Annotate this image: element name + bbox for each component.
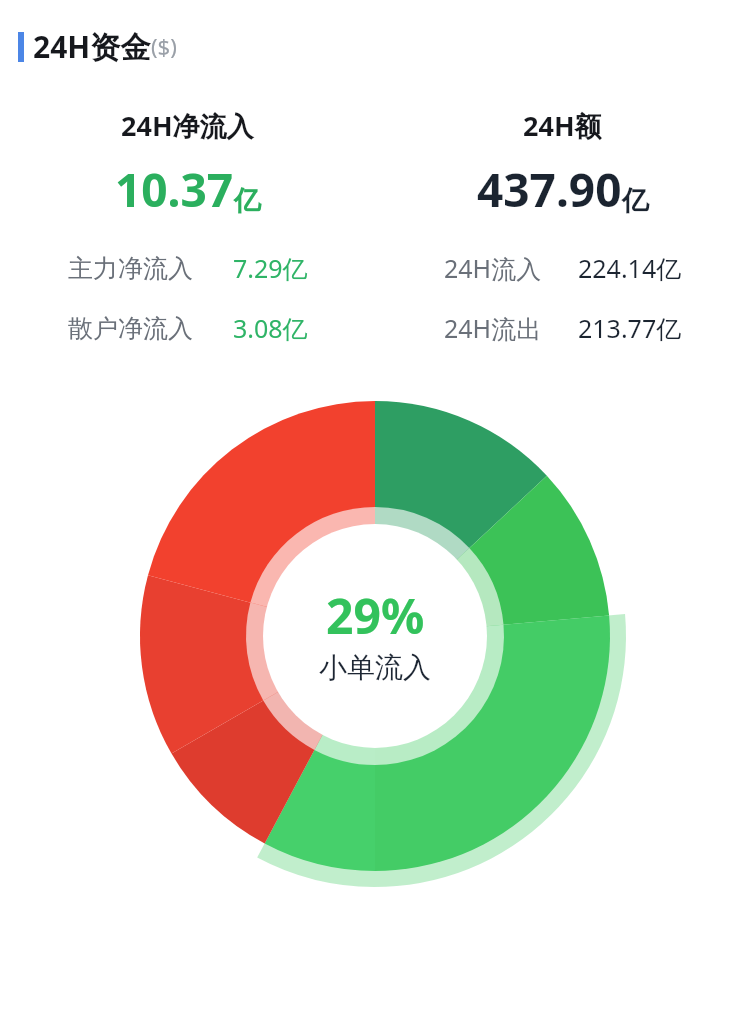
staticText: 散户净流入 — [68, 313, 193, 344]
button[interactable]: 主力净流入 — [68, 251, 308, 285]
staticText: 224.14亿 — [578, 251, 682, 285]
staticText: 24H净流入 — [121, 107, 254, 144]
staticText: 24H资金 — [33, 26, 151, 67]
button[interactable]: 24H流入 — [444, 251, 682, 285]
staticText: 主力净流入 — [68, 253, 193, 284]
staticText: 24H流出 — [444, 311, 542, 345]
button[interactable]: 24H流出 — [444, 311, 682, 345]
staticText: 7.29亿 — [233, 251, 308, 285]
button[interactable]: 资金流向环形图 — [125, 391, 625, 901]
staticText: 亿 — [622, 184, 649, 218]
staticText: 24H额 — [523, 107, 602, 144]
staticText: ($) — [151, 31, 177, 61]
button[interactable]: 散户净流入 — [68, 311, 308, 345]
staticText: 3.08亿 — [233, 311, 308, 345]
staticText: 29% — [326, 583, 425, 648]
staticText: 213.77亿 — [578, 311, 682, 345]
staticText: 10.37 — [115, 158, 234, 221]
staticText: 小单流入 — [319, 650, 431, 685]
staticText: 亿 — [234, 184, 261, 218]
staticText: 24H流入 — [444, 251, 542, 285]
button[interactable]: 24H资金 — [0, 26, 750, 67]
staticText: 437.90 — [477, 158, 622, 221]
